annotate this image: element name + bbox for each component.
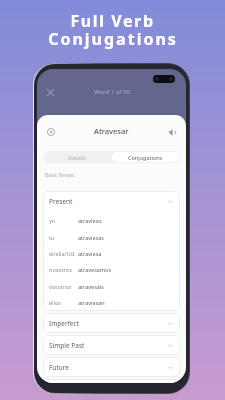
- button[interactable]: yo: [49, 212, 174, 228]
- staticText: ellos: [49, 299, 61, 306]
- staticText: Present: [49, 197, 73, 206]
- button[interactable]: Details: [43, 151, 111, 163]
- button[interactable]: Imperfect: [49, 313, 173, 333]
- button[interactable]: Simple Past: [49, 335, 173, 355]
- staticText: Future: [49, 363, 69, 372]
- staticText: Details: [68, 154, 86, 161]
- staticText: Full Verb: [70, 10, 155, 32]
- staticText: atraviesa: [78, 250, 102, 257]
- staticText: Conjugations: [128, 154, 163, 161]
- staticText: el/ella/Ud.: [49, 250, 76, 257]
- staticText: atravesamos: [78, 266, 112, 273]
- staticText: atraviesan: [78, 299, 105, 306]
- button[interactable]: vosotros: [49, 278, 174, 294]
- button[interactable]: Conditional: [49, 379, 173, 383]
- button[interactable]: nosotros: [49, 261, 174, 277]
- staticText: Atravesar: [94, 126, 129, 136]
- staticText: atraviesas: [78, 234, 104, 241]
- button[interactable]: Present: [49, 191, 173, 212]
- staticText: Basic Tenses: [45, 172, 75, 179]
- staticText: Simple Past: [49, 341, 85, 350]
- staticText: atravieso: [78, 217, 102, 224]
- staticText: nosotros: [49, 266, 72, 273]
- button[interactable]: el/ella/Ud.: [49, 245, 174, 261]
- button[interactable]: tu: [49, 229, 174, 245]
- staticText: Conjugations: [48, 28, 178, 50]
- button[interactable]: Future: [49, 357, 173, 377]
- button[interactable]: Conjugations: [112, 152, 179, 162]
- button[interactable]: ellos: [49, 294, 174, 310]
- staticText: yo: [49, 217, 56, 224]
- staticText: vosotros: [49, 283, 72, 290]
- button[interactable]: Close: [45, 126, 57, 138]
- staticText: Imperfect: [49, 319, 79, 328]
- button[interactable]: Play pronunciation: [166, 126, 178, 138]
- staticText: Word 1 of 50: [94, 88, 130, 96]
- staticText: tu: [49, 234, 55, 241]
- button[interactable]: Close: [44, 86, 56, 98]
- staticText: atravesáis: [78, 283, 104, 290]
